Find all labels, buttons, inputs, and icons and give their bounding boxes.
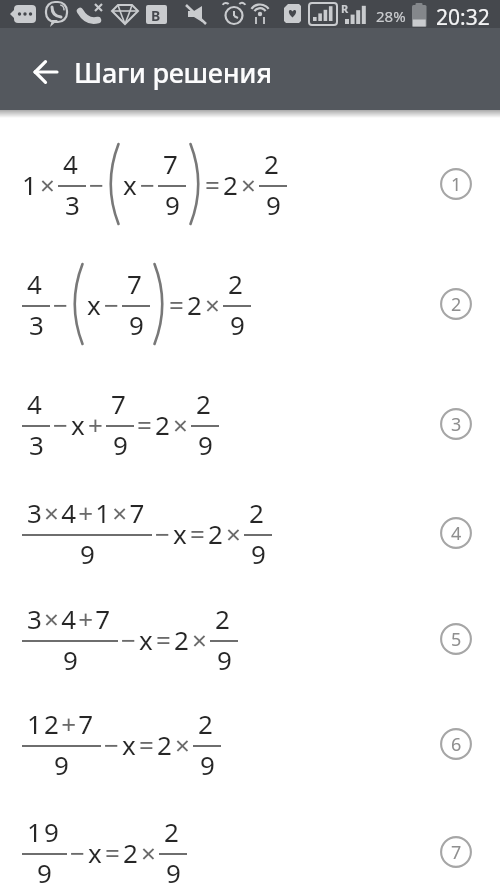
- staticText: −: [70, 835, 85, 870]
- staticText: 7: [451, 840, 462, 865]
- staticText: 2: [249, 495, 267, 530]
- button[interactable]: [0, 28, 74, 110]
- staticText: 3: [29, 427, 44, 462]
- staticText: x: [123, 167, 137, 202]
- staticText: 12+7: [27, 706, 96, 741]
- staticText: 9: [54, 747, 69, 782]
- staticText: 9: [251, 536, 266, 571]
- staticText: 7: [111, 386, 129, 421]
- staticText: 2: [187, 287, 202, 322]
- staticText: −: [155, 516, 170, 551]
- staticText: 2: [451, 292, 462, 317]
- button[interactable]: 3×4+7: [22, 584, 472, 694]
- button[interactable]: 4: [22, 369, 472, 479]
- staticText: 2: [123, 835, 138, 870]
- staticText: B: [151, 6, 161, 25]
- staticText: 2: [198, 706, 216, 741]
- staticText: =: [105, 835, 120, 870]
- staticText: =: [205, 167, 220, 202]
- staticText: 9: [230, 307, 245, 342]
- staticText: −: [104, 287, 119, 322]
- staticText: x: [122, 727, 136, 762]
- staticText: 19: [27, 814, 62, 849]
- staticText: −: [53, 287, 68, 322]
- staticText: −: [121, 622, 136, 657]
- staticText: 3×4+1×7: [27, 495, 147, 530]
- staticText: −: [140, 167, 155, 202]
- staticText: x: [87, 287, 101, 322]
- staticText: ×: [40, 167, 55, 202]
- staticText: =: [156, 622, 171, 657]
- staticText: ×: [141, 835, 156, 870]
- staticText: 2: [228, 266, 246, 301]
- staticText: 2: [155, 407, 170, 442]
- staticText: 3: [65, 187, 80, 222]
- staticText: 4: [63, 146, 81, 181]
- button[interactable]: 4: [22, 249, 472, 359]
- staticText: 7: [127, 266, 145, 301]
- staticText: −: [53, 407, 68, 442]
- staticText: 7: [163, 146, 181, 181]
- staticText: −: [104, 727, 119, 762]
- staticText: x: [139, 622, 153, 657]
- staticText: 9: [113, 427, 128, 462]
- staticText: 2: [215, 601, 233, 636]
- staticText: 3: [29, 307, 44, 342]
- staticText: 3: [451, 412, 462, 437]
- staticText: 9: [129, 307, 144, 342]
- staticText: 9: [200, 747, 215, 782]
- staticText: ×: [192, 622, 207, 657]
- staticText: 5: [451, 627, 462, 652]
- staticText: ×: [205, 287, 220, 322]
- staticText: 2: [264, 146, 282, 181]
- button[interactable]: 1: [22, 129, 472, 239]
- staticText: 3×4+7: [27, 601, 113, 636]
- staticText: 1: [22, 167, 37, 202]
- staticText: 2: [196, 386, 214, 421]
- staticText: 28%: [376, 6, 406, 26]
- staticText: ×: [226, 516, 241, 551]
- button[interactable]: 12+7: [22, 689, 472, 799]
- staticText: 9: [80, 536, 95, 571]
- staticText: 2: [157, 727, 172, 762]
- staticText: 2: [164, 814, 182, 849]
- staticText: 4: [451, 521, 462, 546]
- staticText: ×: [173, 407, 188, 442]
- staticText: 9: [165, 187, 180, 222]
- staticText: x: [71, 407, 85, 442]
- staticText: =: [169, 287, 184, 322]
- staticText: −: [89, 167, 104, 202]
- button[interactable]: 19: [22, 797, 472, 888]
- staticText: 9: [63, 642, 78, 677]
- staticText: 20:32: [436, 3, 490, 31]
- staticText: 9: [217, 642, 232, 677]
- staticText: R: [341, 1, 349, 16]
- staticText: x: [88, 835, 102, 870]
- staticText: x: [173, 516, 187, 551]
- button[interactable]: 3×4+1×7: [22, 478, 472, 588]
- staticText: 6: [451, 732, 462, 757]
- staticText: 2: [174, 622, 189, 657]
- staticText: 2: [208, 516, 223, 551]
- staticText: ×: [175, 727, 190, 762]
- staticText: 1: [451, 172, 462, 197]
- staticText: 4: [27, 386, 45, 421]
- staticText: +: [88, 407, 103, 442]
- staticText: 9: [166, 855, 181, 888]
- staticText: =: [139, 727, 154, 762]
- staticText: ×: [241, 167, 256, 202]
- staticText: 9: [266, 187, 281, 222]
- staticText: =: [137, 407, 152, 442]
- staticText: 2: [223, 167, 238, 202]
- staticText: 9: [37, 855, 52, 888]
- staticText: Шаги решения: [74, 54, 272, 91]
- staticText: =: [190, 516, 205, 551]
- staticText: 9: [198, 427, 213, 462]
- staticText: 4: [27, 266, 45, 301]
